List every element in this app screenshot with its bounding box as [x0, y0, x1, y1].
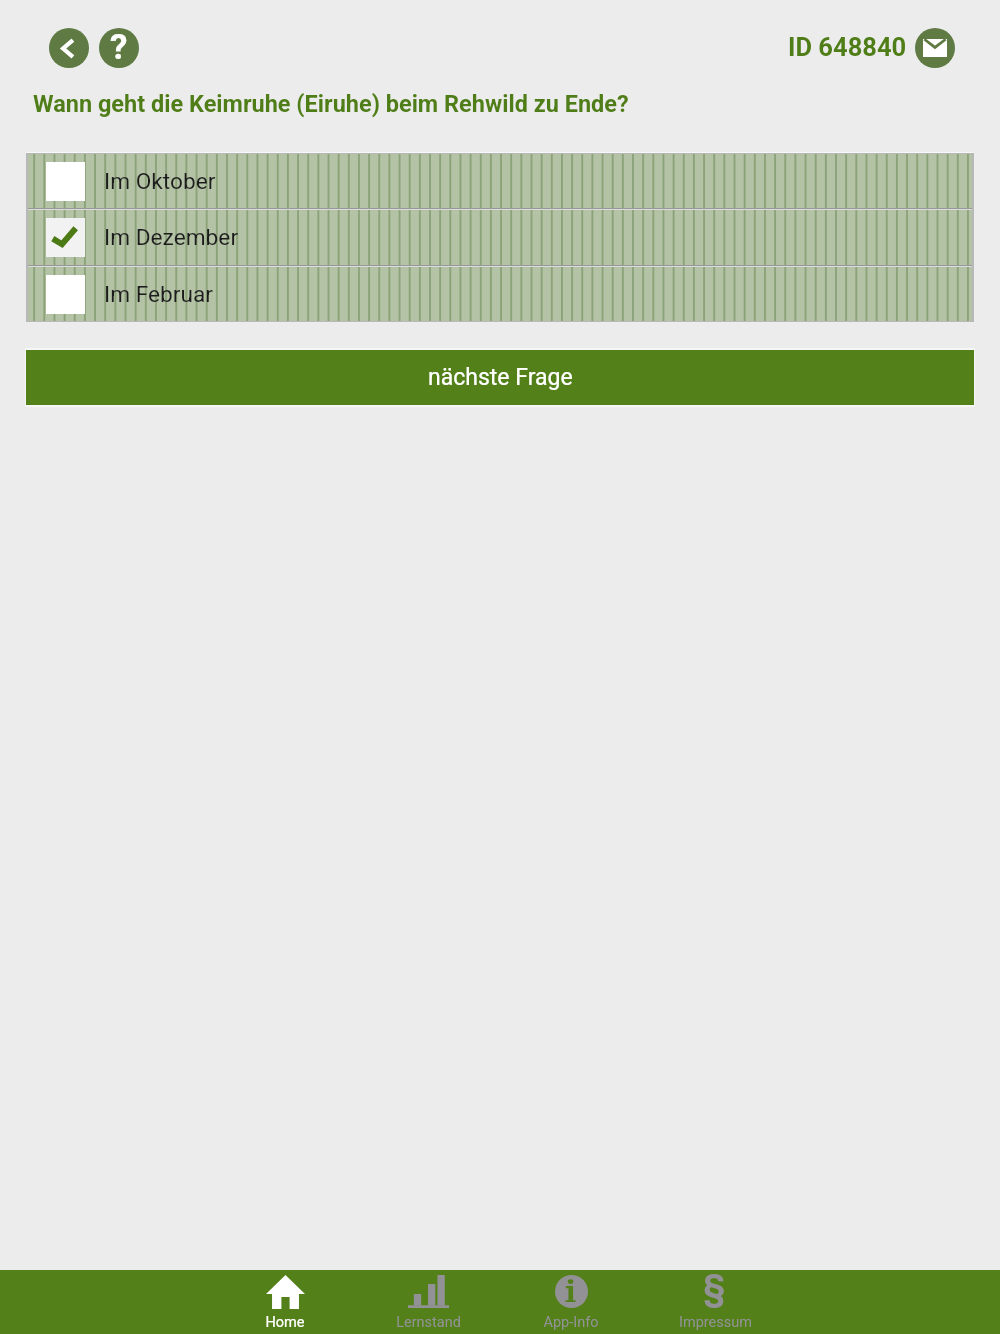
staticText: ID 648840 — [788, 32, 907, 62]
button[interactable]: Im Februar — [28, 267, 972, 321]
staticText: Wann geht die Keimruhe (Eiruhe) beim Reh… — [33, 90, 629, 118]
staticText: Im Dezember — [104, 224, 239, 251]
button[interactable]: Home — [229, 1270, 341, 1334]
staticText: ? — [110, 28, 128, 67]
staticText: Home — [265, 1314, 305, 1331]
button[interactable]: Help — [99, 28, 139, 68]
button[interactable]: § — [659, 1270, 771, 1334]
button[interactable]: Back — [49, 28, 89, 68]
button[interactable]: Lernstand — [372, 1270, 484, 1334]
staticText: nächste Frage — [428, 364, 573, 391]
button[interactable]: Im Dezember — [28, 210, 972, 265]
staticText: App-Info — [543, 1314, 599, 1331]
staticText: Lernstand — [396, 1314, 461, 1331]
staticText: Im Oktober — [104, 168, 216, 195]
button[interactable]: Contact by mail — [915, 28, 955, 68]
staticText: Impressum — [679, 1314, 752, 1331]
staticText: Im Februar — [104, 281, 213, 308]
button[interactable]: App-Info — [515, 1270, 627, 1334]
button[interactable]: Im Oktober — [28, 154, 972, 208]
staticText: § — [703, 1267, 726, 1309]
button[interactable]: nächste Frage — [26, 350, 974, 405]
